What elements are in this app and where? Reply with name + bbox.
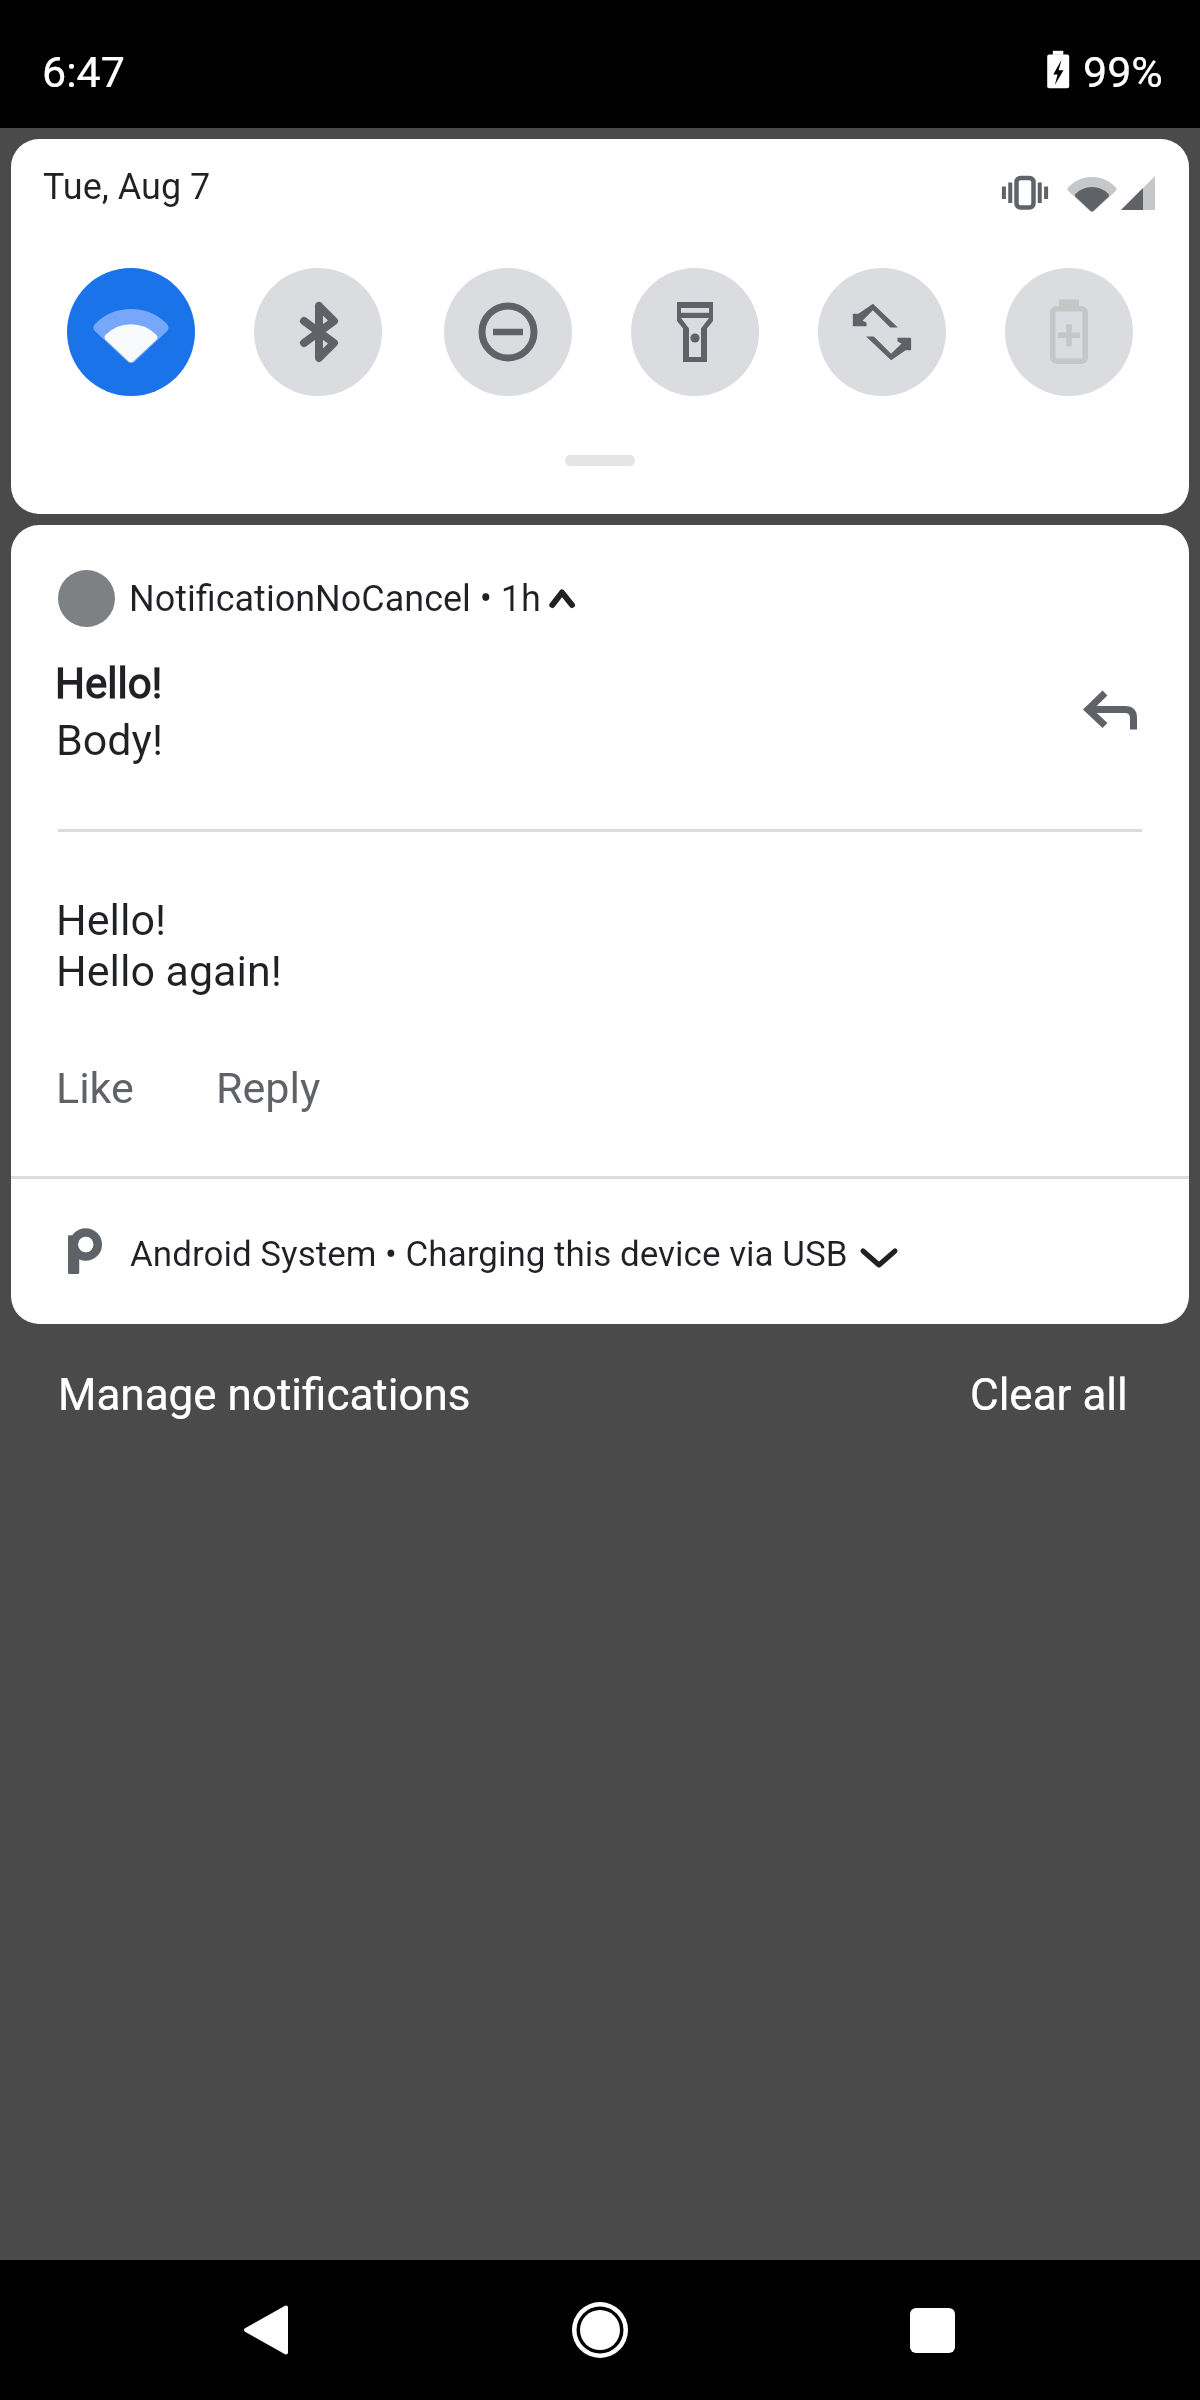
staticText: Body! <box>56 715 163 765</box>
staticText: Android System • Charging this device vi… <box>130 1234 848 1275</box>
staticText: Reply <box>216 1063 321 1113</box>
staticText: Hello! <box>56 895 166 945</box>
staticText: Tue, Aug 7 <box>43 166 211 208</box>
button[interactable]: Bluetooth <box>254 268 382 396</box>
button[interactable]: Reply <box>1075 680 1150 745</box>
button[interactable]: Android System • Charging this device vi… <box>11 1179 1189 1324</box>
button[interactable]: Clear all <box>970 1369 1128 1421</box>
staticText: Manage notifications <box>58 1369 471 1421</box>
staticText: 99% <box>1083 47 1163 97</box>
staticText: Clear all <box>970 1369 1128 1421</box>
button[interactable]: Flashlight <box>631 268 759 396</box>
staticText: Hello again! <box>56 946 282 996</box>
staticText: Like <box>56 1063 134 1113</box>
button[interactable]: Battery Saver <box>1005 268 1133 396</box>
button[interactable]: Auto-rotate <box>818 268 946 396</box>
button[interactable]: Like <box>56 1063 134 1113</box>
button[interactable]: Home <box>540 2270 660 2390</box>
staticText: 6:47 <box>42 47 125 97</box>
button[interactable]: Recents <box>872 2270 992 2390</box>
button[interactable]: Reply <box>216 1063 321 1113</box>
staticText: NotificationNoCancel • 1h <box>129 578 541 620</box>
staticText: Hello! <box>55 659 163 708</box>
button[interactable]: Wi-Fi <box>67 268 195 396</box>
button[interactable]: Manage notifications <box>58 1369 471 1421</box>
button[interactable]: Collapse <box>524 562 600 638</box>
button[interactable]: Do Not Disturb <box>444 268 572 396</box>
button[interactable]: Back <box>205 2270 325 2390</box>
